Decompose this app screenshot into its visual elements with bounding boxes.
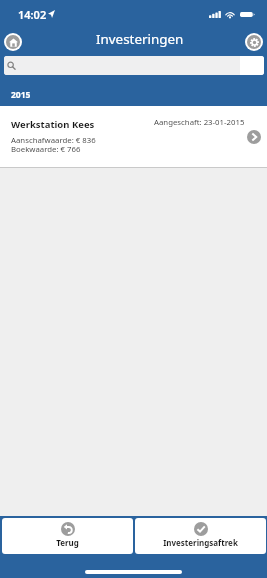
staticText: Terug [56, 537, 79, 548]
button[interactable]: Terug [2, 518, 133, 554]
staticText: Werkstation Kees [11, 118, 95, 131]
staticText: 14:02 [18, 7, 47, 22]
staticText: Boekwaarde: € 766 [11, 144, 81, 155]
button[interactable]: Werkstation Kees [0, 106, 267, 167]
button[interactable] [240, 56, 264, 75]
staticText: Investeringen [96, 30, 184, 48]
button[interactable]: Investeringsaftrek [135, 518, 266, 554]
staticText: Investeringsaftrek [163, 537, 238, 548]
staticText: 2015 [11, 89, 31, 101]
staticText: Aangeschaft: 23-01-2015 [154, 117, 245, 128]
button[interactable]: Search [4, 56, 240, 75]
button[interactable]: Settings [245, 33, 263, 51]
staticText: Aanschafwaarde: € 836 [11, 135, 96, 146]
button[interactable]: Details [247, 130, 261, 144]
button[interactable]: Home [4, 33, 22, 51]
